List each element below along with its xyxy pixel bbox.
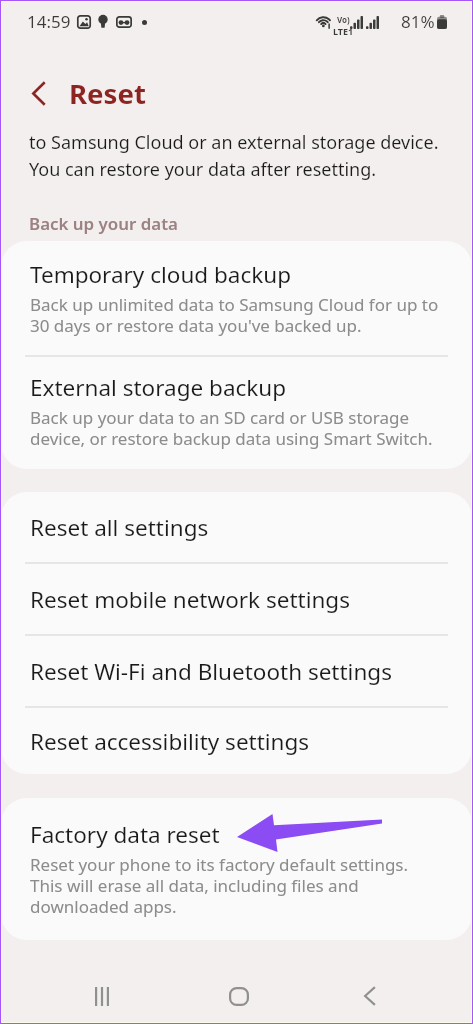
staticText: Vo) — [337, 14, 350, 25]
staticText: Back up your data — [29, 211, 178, 235]
button[interactable]: Temporary cloud backup — [1, 241, 472, 355]
button[interactable]: Reset Wi-Fi and Bluetooth settings — [1, 636, 472, 706]
button[interactable]: External storage backup — [1, 357, 472, 469]
button[interactable]: Navigate up — [15, 69, 63, 117]
staticText: Back up unlimited data to Samsung Cloud … — [30, 294, 439, 336]
staticText: Factory data reset — [30, 819, 220, 850]
button[interactable]: Reset all settings — [1, 492, 472, 562]
staticText: to Samsung Cloud or an external storage … — [29, 127, 439, 181]
staticText: Reset — [69, 77, 146, 111]
staticText: LTE1 — [333, 25, 354, 37]
staticText: Reset mobile network settings — [30, 584, 350, 615]
staticText: Reset your phone to its factory default … — [30, 854, 409, 917]
button[interactable]: Reset accessibility settings — [1, 708, 472, 774]
staticText: Temporary cloud backup — [30, 259, 292, 290]
staticText: Back up your data to an SD card or USB s… — [30, 407, 433, 449]
button[interactable]: Reset mobile network settings — [1, 564, 472, 634]
staticText: 81% — [401, 11, 435, 33]
button[interactable]: Back — [338, 964, 402, 1024]
button[interactable]: Home — [207, 964, 271, 1024]
staticText: Reset accessibility settings — [30, 726, 310, 757]
button[interactable]: Factory data reset — [1, 798, 472, 940]
button[interactable]: Recent apps — [70, 964, 134, 1024]
staticText: Reset all settings — [30, 512, 209, 543]
staticText: 14:59 — [27, 11, 71, 33]
staticText: Reset Wi-Fi and Bluetooth settings — [30, 656, 392, 687]
staticText: External storage backup — [30, 372, 287, 403]
